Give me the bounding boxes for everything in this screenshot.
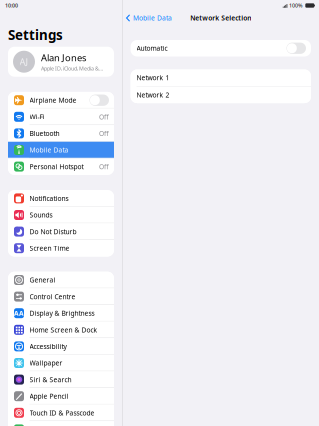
staticText: Wallpaper bbox=[29, 359, 62, 367]
button[interactable]: Siri & Search bbox=[8, 371, 114, 388]
staticText: Touch ID & Passcode bbox=[29, 408, 94, 417]
button[interactable]: Network 1 bbox=[131, 69, 311, 86]
button[interactable]: Mobile Data bbox=[123, 11, 172, 25]
staticText: Apple ID, iCloud, Media &… bbox=[41, 65, 103, 72]
staticText: Automatic bbox=[137, 44, 168, 53]
staticText: Network 2 bbox=[137, 90, 170, 99]
staticText: Off bbox=[99, 162, 109, 171]
staticText: Siri & Search bbox=[29, 375, 71, 384]
staticText: Screen Time bbox=[29, 244, 69, 253]
button[interactable]: SOS bbox=[8, 421, 114, 426]
staticText: Notifications bbox=[29, 194, 68, 203]
button[interactable]: Notifications bbox=[8, 190, 114, 207]
button[interactable]: Touch ID & Passcode bbox=[8, 404, 114, 421]
staticText: Personal Hotspot bbox=[29, 162, 83, 171]
staticText: Display & Brightness bbox=[29, 309, 94, 318]
button[interactable]: Wallpaper bbox=[8, 355, 114, 371]
staticText: Settings bbox=[8, 26, 63, 44]
staticText: Mobile Data bbox=[133, 14, 172, 22]
staticText: Sounds bbox=[29, 211, 52, 219]
staticText: Network Selection bbox=[190, 14, 251, 22]
staticText: Accessibility bbox=[29, 342, 66, 351]
staticText: Do Not Disturb bbox=[29, 227, 76, 236]
staticText: Alan Jones bbox=[41, 51, 86, 64]
staticText: AA bbox=[14, 309, 24, 318]
staticText: 100% bbox=[289, 2, 303, 9]
button[interactable]: Control Centre bbox=[8, 288, 114, 305]
button[interactable]: Automatic bbox=[131, 40, 311, 56]
staticText: Network 1 bbox=[137, 73, 170, 82]
button[interactable]: AJ bbox=[8, 47, 114, 77]
staticText: Control Centre bbox=[29, 292, 75, 301]
button[interactable]: Network 2 bbox=[131, 87, 311, 103]
button[interactable]: Personal Hotspot bbox=[8, 158, 114, 175]
staticText: Off bbox=[99, 112, 109, 121]
button[interactable]: Home Screen & Dock bbox=[8, 321, 114, 338]
staticText: Off bbox=[99, 129, 109, 138]
button[interactable]: General bbox=[8, 272, 114, 288]
button[interactable]: Airplane Mode bbox=[8, 92, 114, 108]
staticText: Home Screen & Dock bbox=[29, 325, 97, 334]
staticText: Apple Pencil bbox=[29, 392, 68, 401]
button[interactable]: Apple Pencil bbox=[8, 388, 114, 404]
staticText: Bluetooth bbox=[29, 129, 59, 138]
staticText: 10:00 bbox=[5, 2, 18, 9]
button[interactable]: Bluetooth bbox=[8, 125, 114, 142]
button[interactable]: Mobile Data bbox=[8, 142, 114, 158]
staticText: Airplane Mode bbox=[29, 96, 76, 105]
button[interactable]: Sounds bbox=[8, 207, 114, 223]
staticText: Mobile Data bbox=[29, 146, 68, 154]
staticText: AJ bbox=[19, 55, 28, 68]
button[interactable]: Wi-Fi bbox=[8, 108, 114, 125]
button[interactable]: Do Not Disturb bbox=[8, 223, 114, 240]
staticText: General bbox=[29, 276, 55, 284]
button[interactable]: Screen Time bbox=[8, 240, 114, 256]
button[interactable]: AA bbox=[8, 305, 114, 321]
staticText: Wi-Fi bbox=[29, 112, 44, 121]
button[interactable]: Accessibility bbox=[8, 338, 114, 355]
